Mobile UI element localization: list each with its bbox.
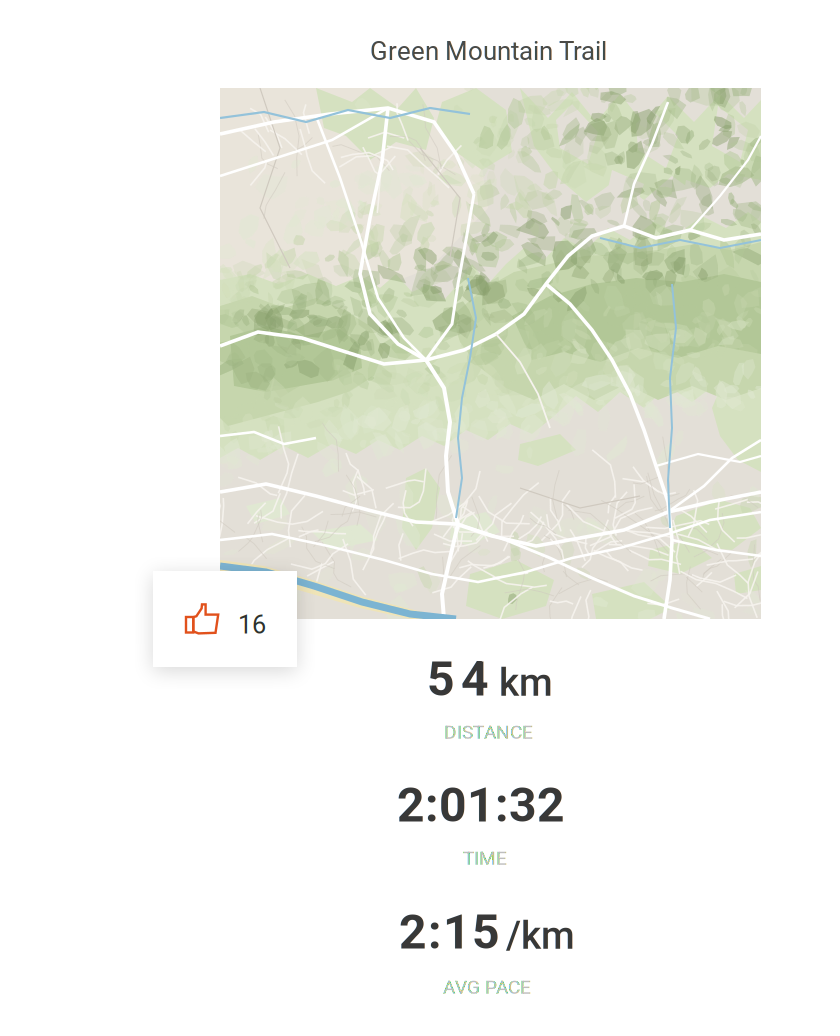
staticText: 2:15: [399, 904, 500, 960]
staticText: Green Mountain Trail: [370, 36, 607, 66]
staticText: 2:01:32: [397, 777, 565, 833]
staticText: km: [499, 660, 553, 705]
staticText: TIME: [463, 847, 507, 869]
staticText: /km: [506, 913, 575, 958]
staticText: 16: [238, 610, 266, 640]
button[interactable]: 16: [153, 571, 297, 667]
staticText: 54: [427, 651, 489, 707]
staticText: AVG PACE: [443, 976, 531, 998]
staticText: DISTANCE: [444, 721, 533, 743]
